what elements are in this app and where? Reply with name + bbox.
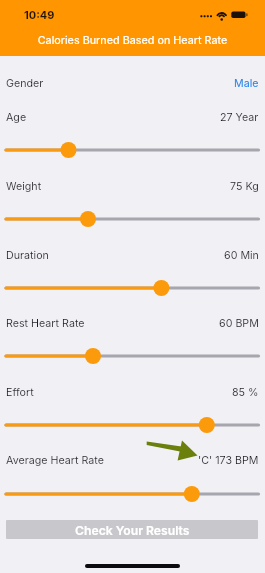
staticText: 60 Min (224, 249, 259, 262)
button[interactable]: Slider (0, 277, 265, 299)
staticText: 'C' 173 BPM (198, 454, 259, 467)
staticText: 10:49 (24, 8, 55, 21)
button[interactable]: Check Your Results (6, 520, 258, 539)
staticText: Rest Heart Rate (6, 317, 85, 330)
button[interactable]: Slider (0, 139, 265, 161)
button[interactable]: Gender (0, 74, 265, 92)
staticText: Average Heart Rate (6, 454, 104, 467)
button[interactable]: Weight (0, 177, 265, 195)
staticText: Age (6, 111, 27, 124)
button[interactable]: Slider (0, 208, 265, 230)
button[interactable]: Slider (0, 414, 265, 436)
button[interactable]: Rest Heart Rate (0, 314, 265, 332)
button[interactable]: Age (0, 108, 265, 126)
staticText: Check Your Results (75, 523, 190, 538)
staticText: 75 Kg (230, 180, 259, 193)
staticText: Gender (6, 77, 44, 90)
button[interactable]: Slider (0, 345, 265, 367)
staticText: 60 BPM (219, 317, 259, 330)
staticText: 85 % (232, 386, 259, 399)
button[interactable]: Slider (0, 483, 265, 505)
button[interactable]: Effort (0, 383, 265, 401)
button[interactable]: Duration (0, 246, 265, 264)
staticText: Male (234, 77, 259, 90)
staticText: Effort (6, 386, 34, 399)
staticText: 27 Year (220, 111, 259, 124)
staticText: Calories Burned Based on Heart Rate (0, 34, 265, 47)
staticText: Weight (6, 180, 42, 193)
button[interactable]: Average Heart Rate (0, 451, 265, 469)
staticText: Duration (6, 249, 49, 262)
